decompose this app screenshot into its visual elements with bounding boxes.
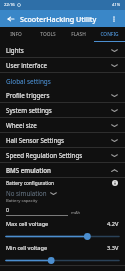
staticText: User interface (6, 61, 47, 69)
button[interactable]: FLASH (63, 27, 94, 41)
staticText: Min cell voltage (6, 244, 48, 252)
staticText: BMS emulation (6, 166, 51, 174)
staticText: 0 (6, 206, 9, 213)
button[interactable]: Profile triggers (0, 88, 125, 103)
staticText: 41% (112, 2, 121, 8)
staticText: Lights (6, 46, 24, 54)
staticText: No simulation (6, 189, 47, 197)
button[interactable] (6, 256, 119, 265)
staticText: ScooterHacking Utility (20, 14, 97, 24)
button[interactable]: Wheel size (0, 118, 125, 133)
button[interactable]: Hall Sensor Settings (0, 133, 125, 148)
staticText: Profile triggers (6, 91, 50, 99)
staticText: TOOLS (40, 31, 56, 38)
button[interactable]: TOOLS (32, 27, 63, 41)
button[interactable]: Speed Regulation Settings (0, 148, 125, 163)
staticText: Max cell voltage (6, 220, 49, 228)
button[interactable]: Back (5, 13, 17, 25)
button[interactable]: INFO (0, 27, 32, 41)
staticText: 4.2V (107, 220, 119, 228)
staticText: Speed Regulation Settings (6, 151, 83, 159)
button[interactable]: More options (108, 13, 120, 25)
button[interactable]: Lights (0, 43, 125, 58)
staticText: Wheel size (6, 121, 37, 129)
staticText: CONFIG (100, 31, 119, 38)
button[interactable]: System settings (0, 103, 125, 118)
button[interactable]: BMS emulation (0, 163, 125, 178)
staticText: Hall Sensor Settings (6, 136, 64, 144)
staticText: Global settings (6, 77, 51, 86)
staticText: FLASH (71, 31, 86, 38)
button[interactable]: Info (111, 179, 119, 187)
button[interactable]: User interface (0, 58, 125, 73)
staticText: 22:16 (4, 2, 15, 8)
staticText: INFO (10, 31, 22, 38)
staticText: mAh (71, 210, 81, 216)
button[interactable] (6, 232, 119, 241)
staticText: 3.3V (107, 244, 119, 252)
staticText: Battery capacity (6, 198, 38, 204)
button[interactable]: No simulation (6, 188, 119, 198)
staticText: System settings (6, 106, 52, 114)
staticText: Battery configuration (6, 180, 55, 187)
button[interactable]: CONFIG (94, 27, 125, 41)
